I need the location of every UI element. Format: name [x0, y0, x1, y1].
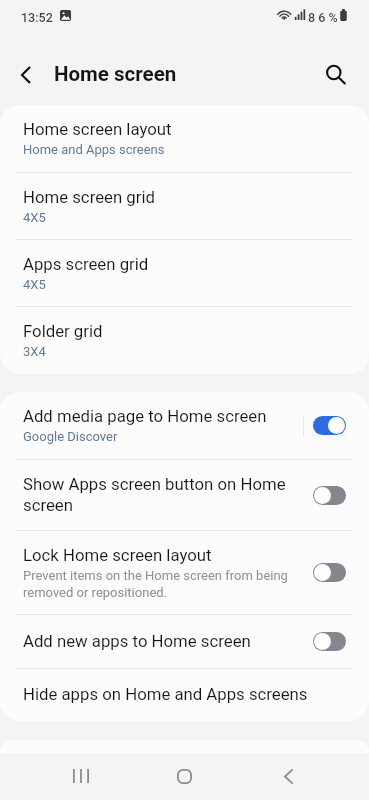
- staticText: Add new apps to Home screen: [23, 631, 251, 651]
- button[interactable]: Search: [318, 57, 354, 93]
- button[interactable]: Hide apps on Home and Apps screens: [0, 669, 369, 721]
- button[interactable]: Navigate up: [8, 57, 44, 93]
- button[interactable]: Lock Home screen layout: [0, 531, 369, 614]
- staticText: 13:52: [21, 10, 53, 25]
- staticText: 3X4: [23, 344, 313, 359]
- staticText: Folder grid: [23, 321, 313, 341]
- staticText: Prevent items on the Home screen from be…: [23, 568, 295, 601]
- button[interactable]: Recent apps: [29, 752, 132, 800]
- staticText: Hide apps on Home and Apps screens: [23, 684, 308, 704]
- staticText: 4X5: [23, 277, 313, 292]
- button[interactable]: Home: [132, 752, 236, 800]
- staticText: Home screen: [54, 62, 177, 86]
- button[interactable]: Add new apps to Home screen: [313, 632, 346, 651]
- staticText: Apps screen grid: [23, 254, 313, 274]
- staticText: Lock Home screen layout: [23, 545, 295, 565]
- button[interactable]: Show Apps screen button on Home screen: [0, 460, 369, 530]
- button[interactable]: Show Apps screen button on Home screen: [313, 486, 346, 505]
- staticText: 86%: [308, 10, 341, 25]
- button[interactable]: Add media page to Home screen: [313, 416, 346, 435]
- button[interactable]: Lock Home screen layout: [313, 563, 346, 582]
- button[interactable]: Home screen layout: [0, 105, 369, 172]
- staticText: 4X5: [23, 210, 313, 225]
- staticText: Google Discover: [23, 429, 285, 444]
- staticText: Home screen grid: [23, 187, 313, 207]
- button[interactable]: Apps screen grid: [0, 240, 369, 306]
- staticText: Home and Apps screens: [23, 142, 313, 157]
- staticText: Add media page to Home screen: [23, 406, 285, 426]
- button[interactable]: Back: [236, 752, 340, 800]
- button[interactable]: Home screen grid: [0, 173, 369, 239]
- staticText: Show Apps screen button on Home screen: [23, 474, 293, 515]
- staticText: Home screen layout: [23, 119, 313, 139]
- button[interactable]: Add new apps to Home screen: [0, 615, 369, 668]
- button[interactable]: Add media page to Home screen: [0, 392, 369, 459]
- button[interactable]: Folder grid: [0, 307, 369, 374]
